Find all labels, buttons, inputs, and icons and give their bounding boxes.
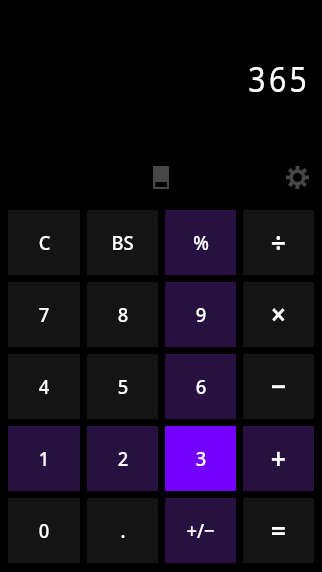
staticText: + (271, 438, 286, 477)
staticText: 5 (117, 373, 128, 400)
button[interactable]: − (243, 354, 314, 419)
button[interactable]: = (243, 498, 314, 563)
staticText: % (193, 229, 209, 256)
button[interactable]: × (243, 282, 314, 347)
button[interactable]: BS (87, 210, 158, 275)
staticText: 2 (117, 445, 128, 472)
staticText: 0 (38, 517, 49, 544)
button[interactable]: 3 (165, 426, 236, 491)
staticText: × (271, 294, 286, 333)
staticText: = (271, 510, 286, 549)
button[interactable]: + (243, 426, 314, 491)
button[interactable]: 6 (165, 354, 236, 419)
button[interactable]: . (87, 498, 158, 563)
staticText: 7 (38, 301, 49, 328)
staticText: 6 (195, 373, 206, 400)
staticText: 3 (195, 445, 206, 472)
staticText: − (271, 366, 286, 405)
button[interactable]: 0 (8, 498, 80, 563)
button[interactable]: +/− (165, 498, 236, 563)
button[interactable]: ÷ (243, 210, 314, 275)
button[interactable]: 8 (87, 282, 158, 347)
staticText: 4 (38, 373, 49, 400)
staticText: 1 (38, 445, 49, 472)
button[interactable]: 5 (87, 354, 158, 419)
button[interactable]: 1 (8, 426, 80, 491)
staticText: BS (111, 229, 134, 256)
button[interactable]: 9 (165, 282, 236, 347)
staticText: 9 (195, 301, 206, 328)
button[interactable]: 2 (87, 426, 158, 491)
staticText: 8 (117, 301, 128, 328)
button[interactable]: Settings (280, 160, 314, 194)
staticText: C (38, 229, 50, 256)
button[interactable]: Memory (144, 160, 178, 194)
button[interactable]: 4 (8, 354, 80, 419)
button[interactable]: % (165, 210, 236, 275)
button[interactable]: C (8, 210, 80, 275)
button[interactable]: 7 (8, 282, 80, 347)
staticText: +/− (186, 517, 215, 544)
staticText: ÷ (271, 222, 286, 261)
staticText: 365 (248, 55, 311, 103)
staticText: . (120, 517, 126, 544)
